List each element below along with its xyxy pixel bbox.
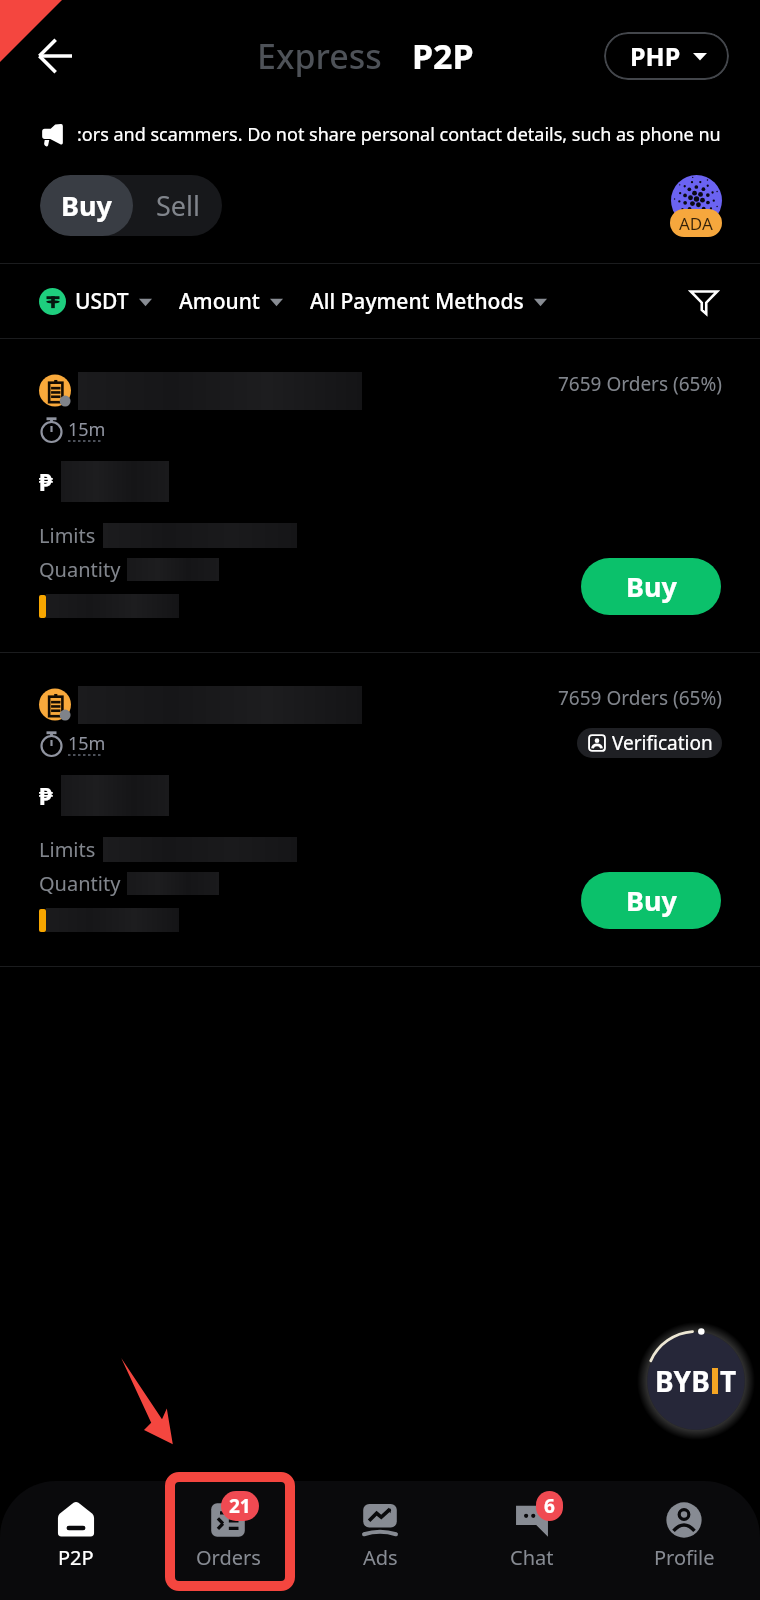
- staticText: :ors and scammers. Do not share personal…: [77, 122, 721, 147]
- staticText: Quantity: [39, 556, 121, 583]
- staticText: 15m: [68, 417, 106, 442]
- staticText: Quantity: [39, 870, 121, 897]
- staticText: Verification: [612, 730, 713, 756]
- staticText: ADA: [679, 212, 713, 235]
- button[interactable]: P2P: [0, 1491, 152, 1577]
- staticText: USDT: [75, 287, 129, 316]
- button[interactable]: Express: [257, 33, 382, 79]
- button[interactable]: Profile: [608, 1491, 760, 1577]
- button[interactable]: P2P: [412, 33, 474, 79]
- button[interactable]: 6: [456, 1491, 608, 1577]
- staticText: ₱: [39, 779, 53, 812]
- staticText: BYB: [655, 1362, 710, 1400]
- button[interactable]: Ads: [304, 1491, 456, 1577]
- button[interactable]: All Payment Methods: [310, 287, 547, 316]
- staticText: ₱: [39, 465, 53, 498]
- button[interactable]: Amount: [179, 287, 283, 316]
- staticText: Buy: [61, 187, 112, 224]
- staticText: 6: [544, 1493, 555, 1519]
- staticText: T: [720, 1362, 737, 1400]
- button[interactable]: Back: [22, 23, 88, 89]
- button[interactable]: 21: [152, 1491, 304, 1577]
- button[interactable]: Buy: [40, 175, 133, 236]
- staticText: Buy: [626, 568, 677, 605]
- button[interactable]: 15m: [0, 339, 760, 652]
- staticText: 21: [229, 1493, 251, 1519]
- button[interactable]: USDT: [39, 287, 152, 316]
- staticText: Orders: [196, 1544, 261, 1571]
- staticText: All Payment Methods: [310, 287, 524, 316]
- staticText: 15m: [68, 731, 106, 756]
- staticText: Profile: [654, 1544, 715, 1571]
- button[interactable]: PHP: [604, 32, 729, 80]
- staticText: Limits: [39, 836, 96, 863]
- staticText: 7659 Orders (65%): [558, 371, 722, 397]
- staticText: Sell: [156, 187, 200, 224]
- button[interactable]: 15m: [0, 653, 760, 966]
- staticText: Chat: [510, 1544, 554, 1571]
- button[interactable]: Buy: [581, 872, 721, 929]
- button[interactable]: Buy: [581, 558, 721, 615]
- staticText: Buy: [626, 882, 677, 919]
- button[interactable]: Sell: [133, 175, 222, 236]
- staticText: Limits: [39, 522, 96, 549]
- staticText: Amount: [179, 287, 260, 316]
- staticText: Ads: [363, 1544, 398, 1571]
- staticText: P2P: [58, 1544, 94, 1571]
- staticText: PHP: [630, 39, 681, 73]
- button[interactable]: Verification: [577, 728, 722, 758]
- staticText: 7659 Orders (65%): [558, 685, 722, 711]
- button[interactable]: Filter: [682, 279, 726, 323]
